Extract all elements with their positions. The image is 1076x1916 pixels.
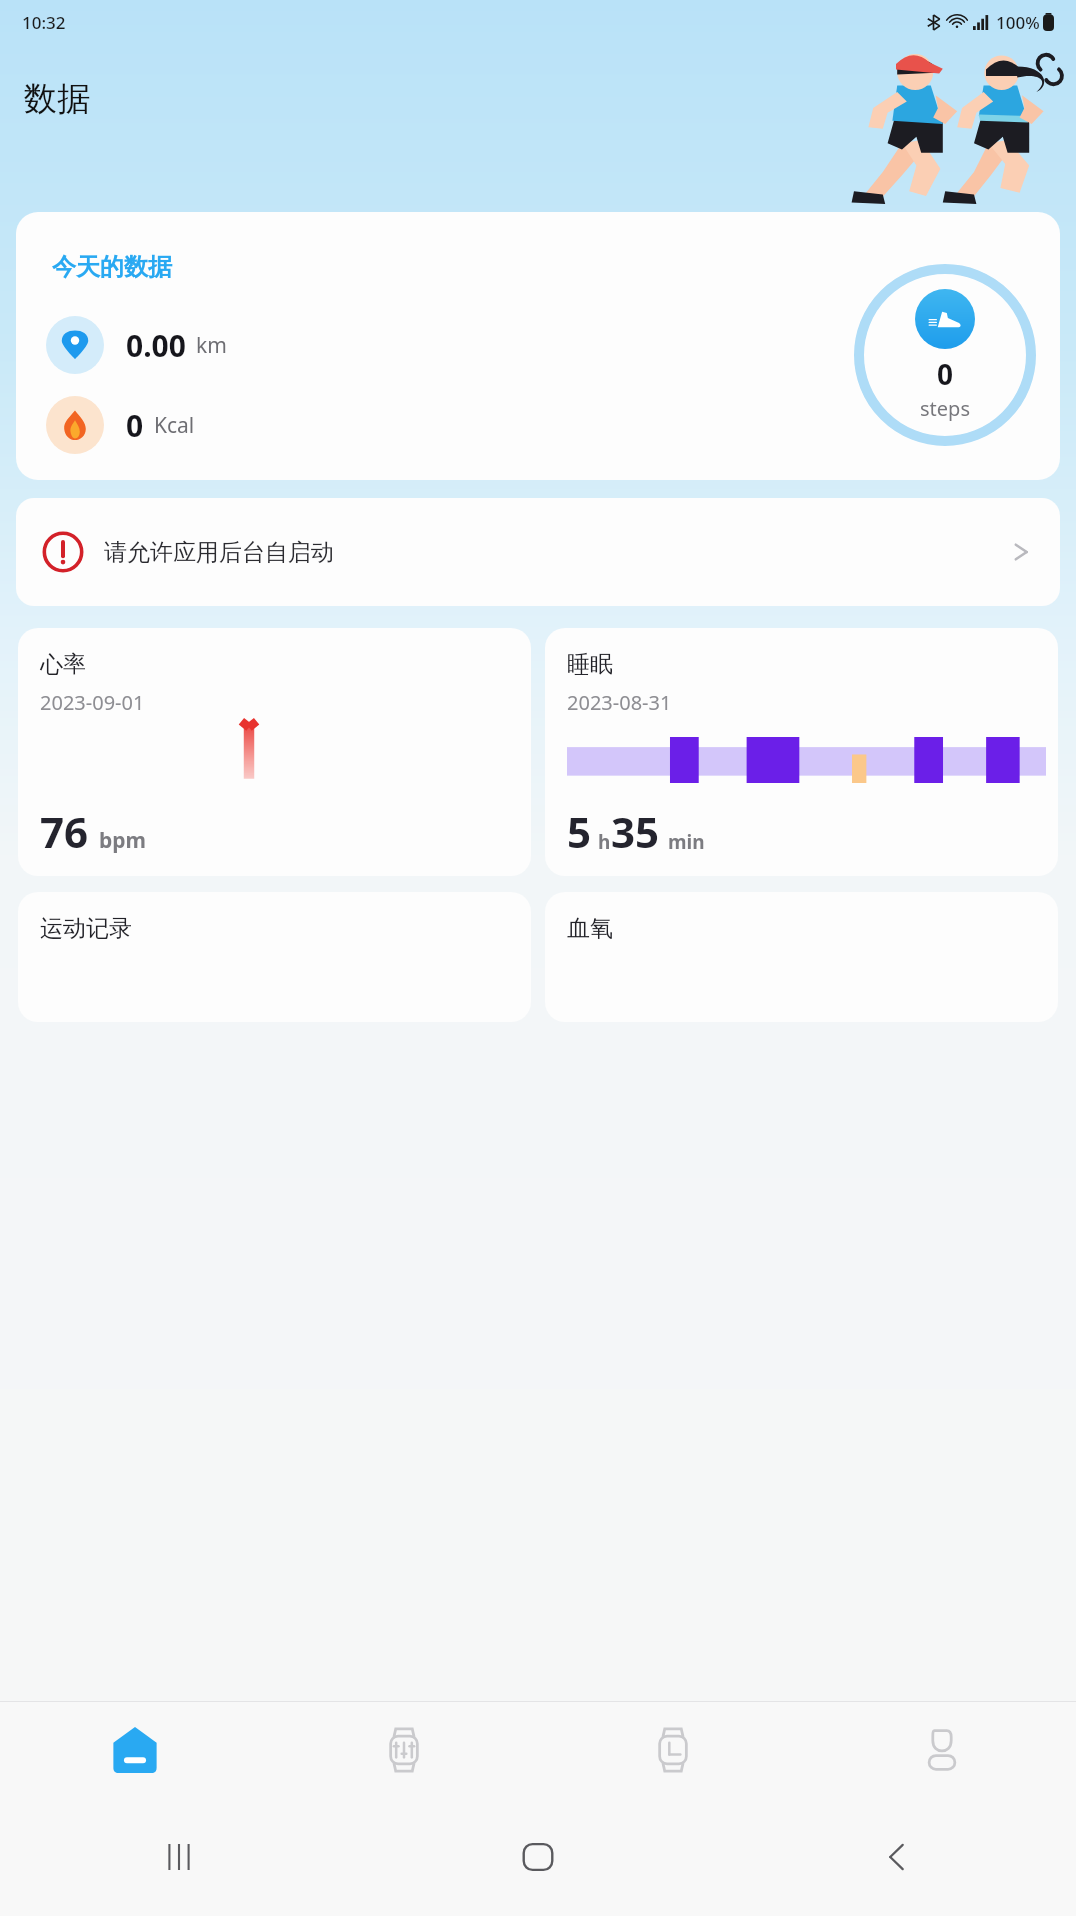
staticText: bpm xyxy=(99,826,147,855)
button[interactable]: 睡眠 xyxy=(545,628,1058,876)
staticText: km xyxy=(196,331,227,360)
staticText: 心率 xyxy=(40,650,86,679)
staticText: 2023-08-31 xyxy=(567,689,672,716)
staticText: 请允许应用后台自启动 xyxy=(104,538,334,567)
staticText: 5 xyxy=(567,803,592,860)
staticText: 100% xyxy=(996,11,1040,34)
staticText: 睡眠 xyxy=(567,650,613,679)
staticText: 35 xyxy=(611,803,660,860)
staticText: 2023-09-01 xyxy=(40,689,145,716)
button[interactable]: 运动记录 xyxy=(18,892,531,1022)
staticText: min xyxy=(668,829,705,855)
button[interactable]: Profile xyxy=(807,1702,1076,1798)
button[interactable]: 请允许应用后台自启动 xyxy=(16,498,1060,606)
staticText: Kcal xyxy=(154,411,195,440)
staticText: 运动记录 xyxy=(40,914,132,943)
button[interactable]: 今天的数据 xyxy=(16,212,1060,480)
button[interactable]: 心率 xyxy=(18,628,531,876)
button[interactable]: 血氧 xyxy=(545,892,1058,1022)
button[interactable]: Home xyxy=(0,1702,269,1798)
staticText: 0 xyxy=(126,405,144,446)
staticText: h xyxy=(598,829,611,855)
staticText: 76 xyxy=(40,803,89,860)
staticText: 今天的数据 xyxy=(52,252,172,282)
staticText: 10:32 xyxy=(22,11,66,34)
staticText: 0.00 xyxy=(126,325,186,366)
button[interactable]: Device xyxy=(538,1702,807,1798)
staticText: 血氧 xyxy=(567,914,613,943)
staticText: 数据 xyxy=(24,78,90,120)
button[interactable]: Activity xyxy=(269,1702,538,1798)
staticText: 0 xyxy=(937,355,954,393)
staticText: steps xyxy=(920,395,970,422)
